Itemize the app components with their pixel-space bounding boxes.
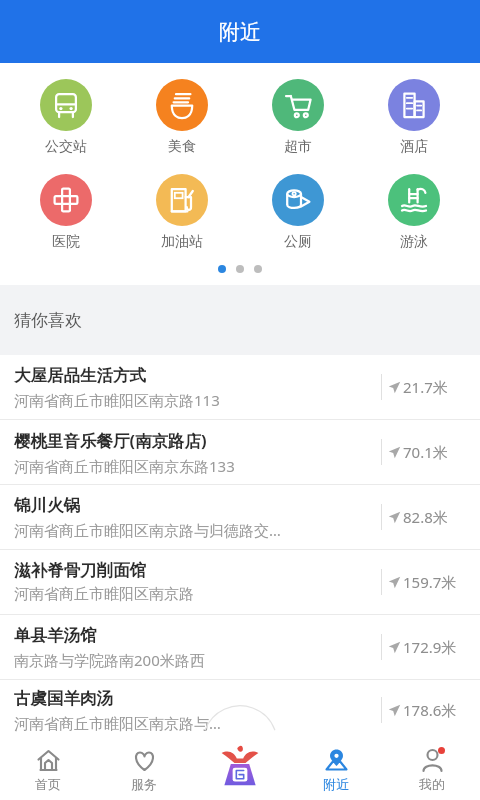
staticText: 樱桃里音乐餐厅(南京路店) bbox=[14, 429, 207, 452]
button[interactable]: 服务 bbox=[96, 740, 192, 800]
button[interactable]: 首页 bbox=[0, 740, 96, 800]
button[interactable]: 锦川火锅 bbox=[0, 485, 480, 549]
staticText: 附近 bbox=[323, 776, 349, 792]
staticText: 70.1米 bbox=[403, 442, 448, 462]
button[interactable]: 樱桃里音乐餐厅(南京路店) bbox=[0, 420, 480, 484]
button[interactable]: 游泳 bbox=[364, 172, 464, 253]
staticText: 河南省商丘市睢阳区南京路与归德路交… bbox=[14, 520, 281, 540]
button[interactable]: 滋补脊骨刀削面馆 bbox=[0, 550, 480, 614]
staticText: 我的 bbox=[419, 776, 445, 792]
button[interactable]: 单县羊汤馆 bbox=[0, 615, 480, 679]
button[interactable]: 美食 bbox=[132, 77, 232, 158]
staticText: 医院 bbox=[52, 233, 80, 251]
staticText: 河南省商丘市睢阳区南京路 bbox=[14, 585, 194, 604]
button[interactable]: 附近 bbox=[288, 740, 384, 800]
button[interactable]: 酒店 bbox=[364, 77, 464, 158]
button[interactable]: 加油站 bbox=[132, 172, 232, 253]
staticText: 公厕 bbox=[284, 233, 312, 251]
button[interactable]: 医院 bbox=[16, 172, 116, 253]
staticText: 首页 bbox=[35, 776, 61, 792]
staticText: 古虞国羊肉汤 bbox=[14, 688, 113, 709]
staticText: 南京路与学院路南200米路西 bbox=[14, 650, 205, 670]
staticText: 加油站 bbox=[161, 233, 203, 251]
staticText: 滋补脊骨刀削面馆 bbox=[14, 560, 146, 581]
button[interactable]: 公交站 bbox=[16, 77, 116, 158]
staticText: 159.7米 bbox=[403, 572, 457, 592]
staticText: 82.8米 bbox=[403, 507, 448, 527]
staticText: 超市 bbox=[284, 138, 312, 156]
staticText: 172.9米 bbox=[403, 637, 457, 657]
staticText: 游泳 bbox=[400, 233, 428, 251]
button[interactable]: 超市 bbox=[248, 77, 348, 158]
staticText: 河南省商丘市睢阳区南京路113 bbox=[14, 390, 220, 410]
staticText: 大屋居品生活方式 bbox=[14, 365, 146, 386]
staticText: 河南省商丘市睢阳区南京东路133 bbox=[14, 456, 235, 476]
button[interactable]: 我的 bbox=[384, 740, 480, 800]
staticText: 服务 bbox=[131, 776, 157, 792]
button[interactable]: 主页入口 bbox=[192, 740, 288, 800]
staticText: 21.7米 bbox=[403, 377, 448, 397]
staticText: 178.6米 bbox=[403, 700, 457, 720]
staticText: 公交站 bbox=[45, 138, 87, 156]
staticText: 附近 bbox=[219, 19, 261, 45]
staticText: 单县羊汤馆 bbox=[14, 625, 97, 646]
staticText: 锦川火锅 bbox=[14, 495, 80, 516]
staticText: 猜你喜欢 bbox=[14, 310, 82, 331]
staticText: 河南省商丘市睢阳区南京路与… bbox=[14, 713, 221, 733]
button[interactable]: 大屋居品生活方式 bbox=[0, 355, 480, 419]
button[interactable]: 古虞国羊肉汤 bbox=[0, 680, 480, 740]
staticText: 美食 bbox=[168, 138, 196, 156]
staticText: 酒店 bbox=[400, 138, 428, 156]
button[interactable]: 公厕 bbox=[248, 172, 348, 253]
